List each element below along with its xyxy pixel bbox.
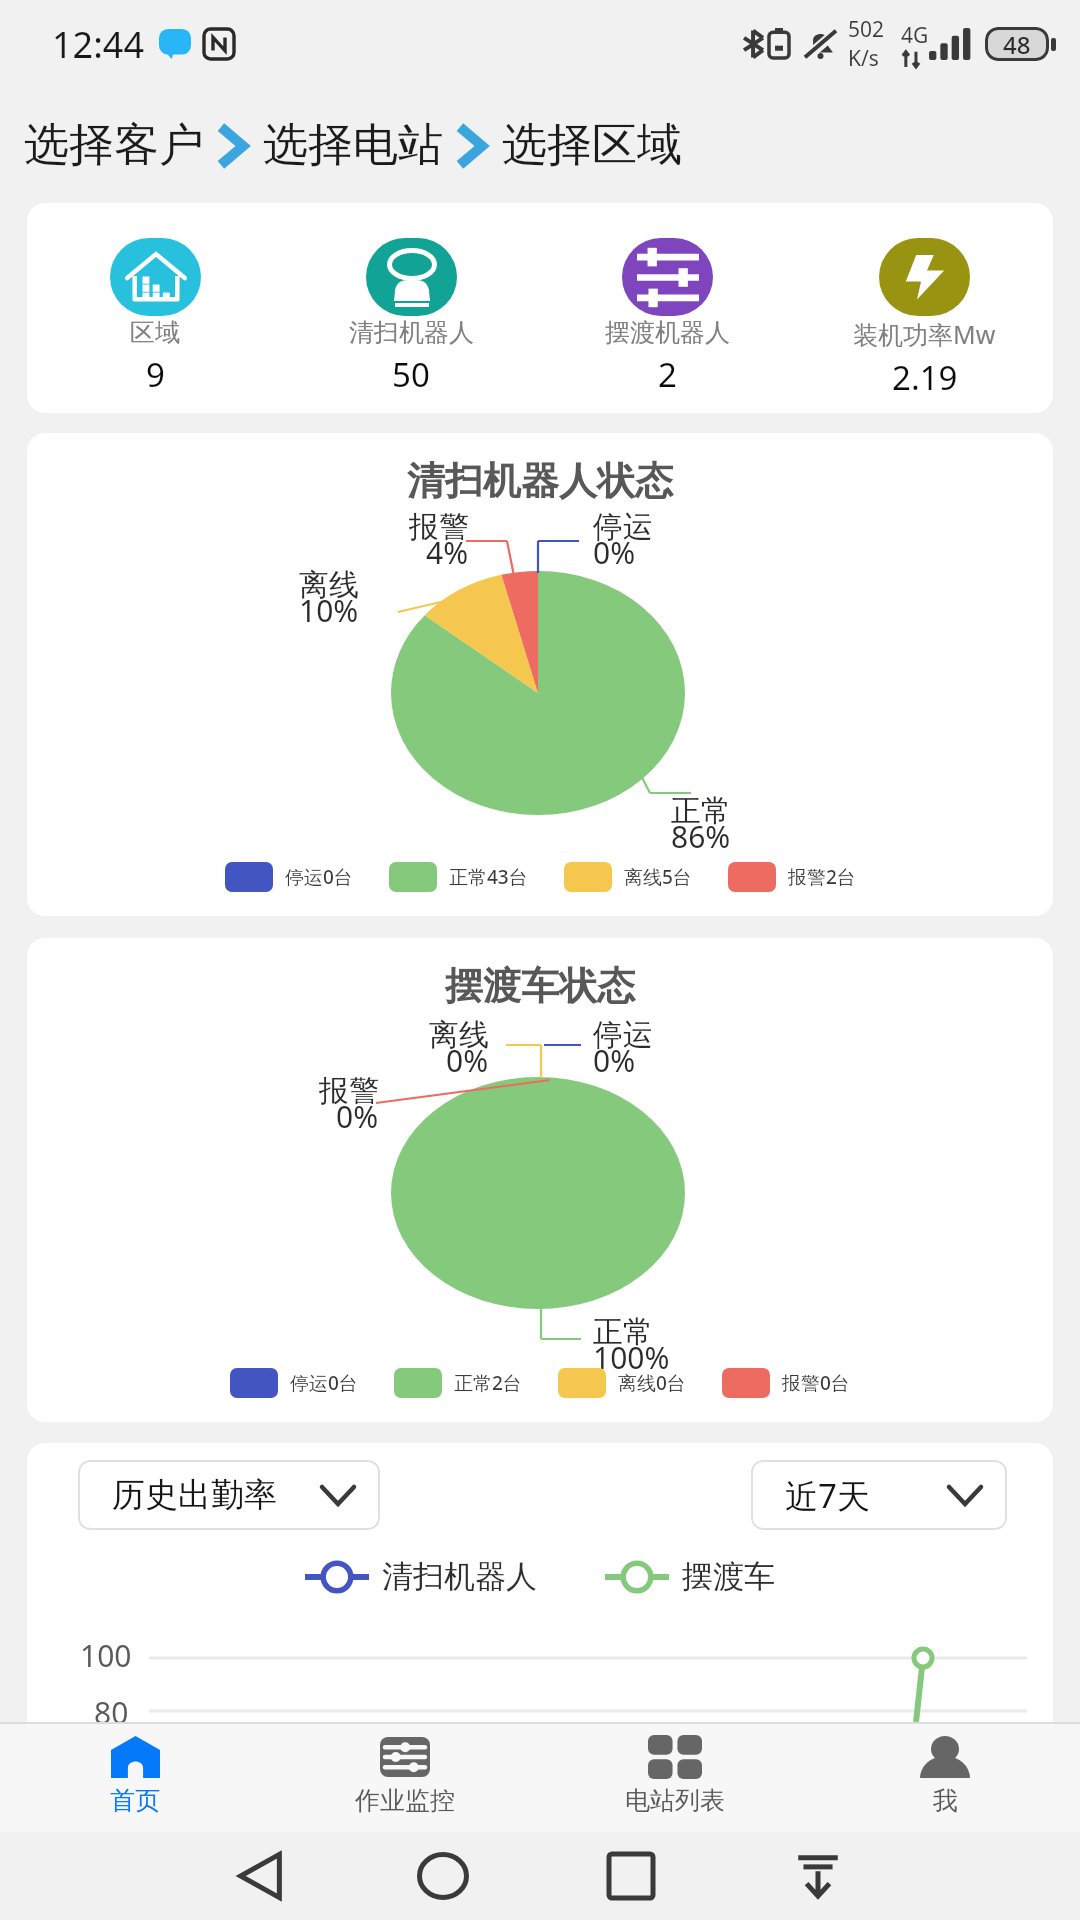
button[interactable]: 首页 <box>0 1724 270 1832</box>
button[interactable]: 离线0台 <box>558 1368 686 1398</box>
button[interactable]: 摆渡机器人 <box>539 203 796 413</box>
staticText: 报警2台 <box>788 864 856 890</box>
staticText: 50 <box>392 352 430 397</box>
staticText: 2.19 <box>892 355 958 400</box>
staticText: 停运0台 <box>285 864 353 890</box>
staticText: 停运 <box>593 508 653 546</box>
staticText: 清扫机器人 <box>349 317 474 348</box>
staticText: 区域 <box>130 317 180 348</box>
button[interactable]: Home <box>399 1832 487 1920</box>
staticText: 清扫机器人 <box>382 1557 537 1596</box>
button[interactable]: Back <box>216 1832 304 1920</box>
button[interactable]: 正常2台 <box>394 1368 522 1398</box>
staticText: 80 <box>94 1692 129 1733</box>
staticText: 4G <box>901 21 929 50</box>
button[interactable]: 停运0台 <box>230 1368 358 1398</box>
staticText: 摆渡机器人 <box>605 317 730 348</box>
button[interactable]: 近7天 <box>751 1460 1007 1530</box>
staticText: 报警 <box>409 508 469 546</box>
staticText: 100 <box>80 1635 132 1676</box>
staticText: 停运0台 <box>290 1370 358 1396</box>
staticText: 离线 <box>429 1016 489 1054</box>
staticText: 电站列表 <box>625 1785 725 1816</box>
staticText: 作业监控 <box>355 1785 455 1816</box>
button[interactable]: 停运0台 <box>225 862 353 892</box>
staticText: 12:44 <box>52 20 145 69</box>
staticText: 首页 <box>110 1785 160 1816</box>
staticText: 摆渡车状态 <box>27 962 1053 1010</box>
staticText: 4% <box>426 532 469 573</box>
staticText: 2 <box>658 352 677 397</box>
staticText: 清扫机器人状态 <box>27 457 1053 505</box>
staticText: 0% <box>446 1040 489 1081</box>
button[interactable]: 我 <box>810 1724 1080 1832</box>
button[interactable]: Recents <box>587 1832 675 1920</box>
staticText: K/s <box>848 44 879 73</box>
button[interactable]: 电站列表 <box>540 1724 810 1832</box>
staticText: 正常 <box>671 792 731 830</box>
staticText: 正常43台 <box>449 864 528 890</box>
staticText: 历史出勤率 <box>112 1474 277 1516</box>
button[interactable]: 正常43台 <box>389 862 528 892</box>
staticText: 10% <box>299 590 359 631</box>
staticText: 0% <box>593 1040 636 1081</box>
staticText: 48 <box>1003 28 1031 61</box>
button[interactable]: 报警0台 <box>722 1368 850 1398</box>
staticText: 我 <box>933 1785 958 1816</box>
staticText: 停运 <box>593 1016 653 1054</box>
staticText: 0% <box>593 532 636 573</box>
button[interactable]: 离线5台 <box>564 862 692 892</box>
button[interactable]: 作业监控 <box>270 1724 540 1832</box>
button[interactable]: 选择区域 <box>502 117 682 174</box>
button[interactable]: 报警2台 <box>728 862 856 892</box>
staticText: 摆渡车 <box>682 1557 775 1596</box>
staticText: 86% <box>671 816 731 857</box>
staticText: 报警0台 <box>782 1370 850 1396</box>
staticText: 装机功率Mw <box>853 317 996 351</box>
staticText: 502 <box>848 15 885 44</box>
button[interactable]: 清扫机器人 <box>283 203 539 413</box>
button[interactable]: 区域 <box>27 203 283 413</box>
button[interactable]: 历史出勤率 <box>78 1460 380 1530</box>
staticText: 近7天 <box>785 1473 870 1518</box>
staticText: 正常 <box>593 1313 653 1351</box>
staticText: 离线5台 <box>624 864 692 890</box>
staticText: 0% <box>336 1096 379 1137</box>
staticText: 离线 <box>299 566 359 604</box>
staticText: 离线0台 <box>618 1370 686 1396</box>
staticText: 100% <box>593 1337 670 1378</box>
staticText: 正常2台 <box>454 1370 522 1396</box>
button[interactable]: 选择电站 <box>263 117 443 174</box>
button[interactable]: 选择客户 <box>24 117 204 174</box>
staticText: 9 <box>146 352 165 397</box>
button[interactable]: Hide navigation bar <box>774 1832 862 1920</box>
staticText: 报警 <box>319 1072 379 1110</box>
button[interactable]: 装机功率Mw <box>796 203 1053 413</box>
